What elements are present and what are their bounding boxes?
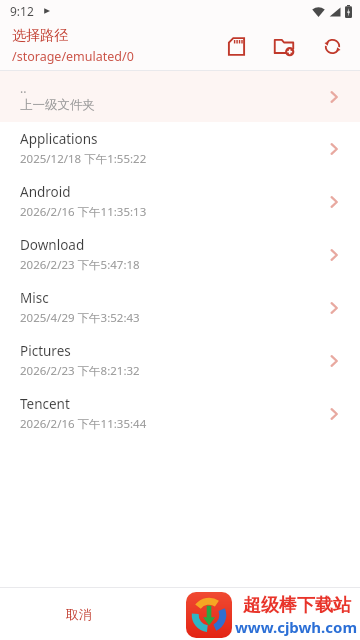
- staticText: Applications: [20, 130, 98, 148]
- staticText: /storage/emulated/0: [12, 48, 134, 65]
- staticText: www.cjbwh.com: [235, 617, 358, 637]
- staticText: 2026/2/16 下午11:35:44: [20, 416, 147, 432]
- button[interactable]: Pictures: [0, 334, 360, 387]
- staticText: 上一级文件夹: [20, 97, 95, 113]
- staticText: 2026/2/23 下午5:47:18: [20, 257, 140, 273]
- button[interactable]: Refresh: [318, 32, 346, 60]
- staticText: ..: [20, 80, 27, 96]
- staticText: 超级棒下载站: [243, 594, 351, 617]
- staticText: 9:12: [10, 3, 34, 19]
- staticText: 2026/2/16 下午11:35:13: [20, 204, 147, 220]
- staticText: Tencent: [20, 395, 70, 413]
- button[interactable]: SD card storage: [222, 32, 250, 60]
- staticText: Download: [20, 236, 85, 254]
- staticText: Misc: [20, 289, 49, 307]
- button[interactable]: Android: [0, 175, 360, 228]
- button[interactable]: Applications: [0, 122, 360, 175]
- staticText: Android: [20, 183, 71, 201]
- staticText: 2025/4/29 下午3:52:43: [20, 310, 140, 326]
- staticText: Pictures: [20, 342, 71, 360]
- button[interactable]: Download: [0, 228, 360, 281]
- button[interactable]: Misc: [0, 281, 360, 334]
- button[interactable]: Tencent: [0, 387, 360, 440]
- button[interactable]: ..: [0, 71, 360, 122]
- staticText: 取消: [66, 606, 92, 622]
- staticText: 2025/12/18 下午1:55:22: [20, 151, 147, 167]
- button[interactable]: Create new folder: [270, 32, 298, 60]
- staticText: 2026/2/23 下午8:21:32: [20, 363, 140, 379]
- button[interactable]: 取消: [50, 598, 108, 630]
- staticText: 选择路径: [12, 27, 68, 45]
